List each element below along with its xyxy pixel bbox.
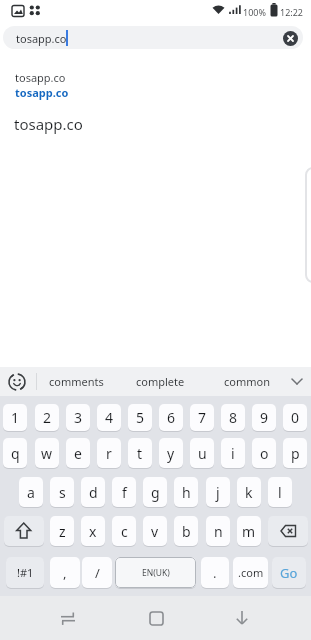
- staticText: 2: [43, 408, 52, 427]
- staticText: tosapp.co: [14, 114, 83, 134]
- button[interactable]: 9: [252, 404, 276, 431]
- button[interactable]: i: [221, 438, 245, 468]
- button[interactable]: r: [97, 438, 121, 468]
- button[interactable]: 1: [3, 404, 27, 431]
- button[interactable]: l: [268, 477, 292, 507]
- button[interactable]: z: [50, 516, 74, 546]
- button[interactable]: [0, 108, 311, 140]
- staticText: h: [182, 483, 191, 502]
- button[interactable]: 8: [221, 404, 245, 431]
- staticText: 5: [136, 408, 145, 427]
- staticText: comments: [49, 374, 104, 389]
- button[interactable]: e: [66, 438, 90, 468]
- button[interactable]: [268, 516, 308, 546]
- button[interactable]: h: [174, 477, 198, 507]
- button[interactable]: t: [128, 438, 152, 468]
- button[interactable]: g: [143, 477, 167, 507]
- staticText: n: [214, 522, 223, 541]
- staticText: v: [151, 522, 159, 541]
- staticText: w: [41, 444, 53, 463]
- staticText: c: [121, 522, 128, 541]
- button[interactable]: m: [237, 516, 261, 546]
- button[interactable]: [286, 369, 308, 393]
- staticText: k: [245, 483, 253, 502]
- staticText: complete: [136, 374, 185, 389]
- button[interactable]: complete: [124, 367, 197, 396]
- button[interactable]: k: [237, 477, 261, 507]
- button[interactable]: 4: [97, 404, 121, 431]
- button[interactable]: [0, 66, 311, 104]
- button[interactable]: 6: [159, 404, 183, 431]
- button[interactable]: .: [201, 557, 229, 588]
- staticText: s: [59, 483, 66, 502]
- staticText: r: [106, 444, 112, 463]
- staticText: 4: [105, 408, 114, 427]
- staticText: 9: [260, 408, 269, 427]
- staticText: m: [242, 522, 256, 541]
- button[interactable]: w: [35, 438, 59, 468]
- button[interactable]: 0: [283, 404, 307, 431]
- staticText: x: [89, 522, 97, 541]
- staticText: !#1: [17, 565, 34, 580]
- staticText: 100%: [243, 6, 266, 18]
- staticText: j: [216, 483, 220, 502]
- button[interactable]: comments: [40, 367, 113, 396]
- button[interactable]: /: [82, 557, 112, 588]
- staticText: 3: [74, 408, 83, 427]
- staticText: .com: [238, 565, 264, 580]
- button[interactable]: [3, 26, 303, 49]
- button[interactable]: d: [81, 477, 105, 507]
- button[interactable]: [48, 598, 88, 638]
- staticText: ,: [63, 564, 67, 582]
- button[interactable]: q: [3, 438, 27, 468]
- staticText: .: [213, 564, 217, 582]
- button[interactable]: 5: [128, 404, 152, 431]
- button[interactable]: 2: [35, 404, 59, 431]
- staticText: i: [231, 444, 235, 463]
- button[interactable]: c: [112, 516, 136, 546]
- staticText: Go: [280, 564, 298, 582]
- staticText: t: [137, 444, 143, 463]
- button[interactable]: !#1: [6, 557, 44, 588]
- button[interactable]: common: [210, 367, 283, 396]
- staticText: g: [151, 483, 160, 502]
- button[interactable]: [136, 598, 176, 638]
- button[interactable]: [222, 598, 262, 638]
- button[interactable]: n: [206, 516, 230, 546]
- button[interactable]: y: [159, 438, 183, 468]
- button[interactable]: [4, 516, 44, 546]
- staticText: a: [27, 483, 35, 502]
- staticText: f: [122, 483, 127, 502]
- button[interactable]: [4, 369, 30, 395]
- staticText: b: [182, 522, 191, 541]
- button[interactable]: p: [283, 438, 307, 468]
- button[interactable]: v: [143, 516, 167, 546]
- staticText: 7: [198, 408, 207, 427]
- button[interactable]: s: [50, 477, 74, 507]
- staticText: q: [11, 444, 20, 463]
- staticText: z: [59, 522, 66, 541]
- staticText: tosapp.co: [15, 85, 69, 100]
- staticText: /: [95, 564, 100, 582]
- button[interactable]: o: [252, 438, 276, 468]
- staticText: 8: [229, 408, 238, 427]
- button[interactable]: .com: [233, 557, 268, 588]
- button[interactable]: EN(UK): [115, 557, 196, 588]
- button[interactable]: a: [19, 477, 43, 507]
- staticText: o: [260, 444, 269, 463]
- staticText: common: [224, 374, 270, 389]
- button[interactable]: j: [206, 477, 230, 507]
- button[interactable]: Go: [272, 557, 306, 588]
- staticText: 1: [11, 408, 20, 427]
- staticText: 0: [291, 408, 300, 427]
- button[interactable]: x: [81, 516, 105, 546]
- button[interactable]: 3: [66, 404, 90, 431]
- button[interactable]: b: [174, 516, 198, 546]
- button[interactable]: f: [112, 477, 136, 507]
- button[interactable]: 7: [190, 404, 214, 431]
- button[interactable]: ,: [50, 557, 80, 588]
- staticText: l: [278, 483, 282, 502]
- button[interactable]: [283, 31, 298, 46]
- button[interactable]: u: [190, 438, 214, 468]
- staticText: tosapp.co: [15, 70, 66, 85]
